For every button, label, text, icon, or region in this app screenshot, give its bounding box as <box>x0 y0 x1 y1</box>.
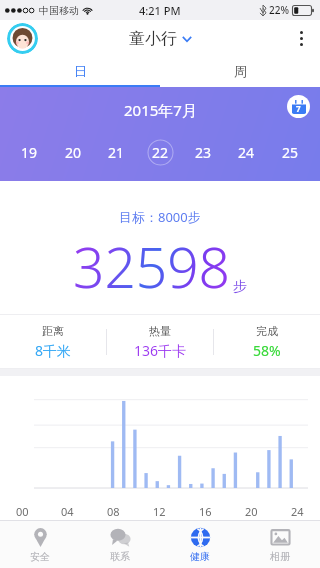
button[interactable]: 健康 <box>160 521 240 568</box>
staticText: 7 <box>296 103 301 114</box>
staticText: 25 <box>282 143 299 162</box>
staticText: 16 <box>199 504 212 516</box>
staticText: 21 <box>108 143 125 162</box>
button[interactable]: 日 <box>0 57 160 85</box>
staticText: 22% <box>269 3 289 17</box>
staticText: 距离 <box>42 324 64 338</box>
staticText: 目标：8000步 <box>119 208 201 226</box>
button[interactable]: More options <box>283 20 320 57</box>
staticText: 24 <box>238 143 255 162</box>
staticText: 32598 <box>73 229 231 304</box>
staticText: 08 <box>107 504 120 516</box>
staticText: 日 <box>74 63 87 79</box>
staticText: 联系 <box>110 550 130 563</box>
button[interactable]: 25 <box>277 139 304 166</box>
button[interactable]: Calendar <box>287 95 310 118</box>
staticText: 8千米 <box>35 341 72 360</box>
button[interactable]: 距离 <box>0 314 106 369</box>
staticText: 58% <box>253 341 281 360</box>
staticText: 健康 <box>190 550 210 563</box>
button[interactable]: 相册 <box>240 521 320 568</box>
button[interactable]: 24 <box>233 139 260 166</box>
staticText: 20 <box>245 504 258 516</box>
staticText: 22 <box>152 143 169 162</box>
staticText: 4:21 PM <box>139 3 181 18</box>
staticText: 热量 <box>149 324 171 338</box>
staticText: 步 <box>233 278 247 296</box>
button[interactable]: 童小行 <box>129 29 192 49</box>
staticText: 安全 <box>30 550 50 563</box>
staticText: 19 <box>21 143 38 162</box>
staticText: 04 <box>61 504 74 516</box>
staticText: 周 <box>234 63 247 79</box>
button[interactable]: 热量 <box>107 314 213 369</box>
button[interactable]: 20 <box>60 139 87 166</box>
button[interactable]: 安全 <box>0 521 80 568</box>
staticText: 20 <box>65 143 82 162</box>
staticText: 136千卡 <box>134 341 187 360</box>
staticText: 12 <box>153 504 166 516</box>
staticText: 完成 <box>256 324 278 338</box>
staticText: 中国移动 <box>39 4 79 17</box>
button[interactable]: 完成 <box>214 314 320 369</box>
button[interactable]: 周 <box>160 57 320 85</box>
staticText: 24 <box>291 504 304 516</box>
button[interactable]: 21 <box>103 139 130 166</box>
staticText: 23 <box>195 143 212 162</box>
button[interactable]: 19 <box>16 139 43 166</box>
button[interactable]: 联系 <box>80 521 160 568</box>
staticText: 童小行 <box>129 29 177 49</box>
button[interactable]: 23 <box>190 139 217 166</box>
staticText: 2015年7月 <box>124 100 197 120</box>
button[interactable]: 22 <box>147 139 174 166</box>
staticText: 相册 <box>270 550 290 563</box>
staticText: 00 <box>16 504 29 516</box>
button[interactable]: Profile <box>7 23 38 54</box>
